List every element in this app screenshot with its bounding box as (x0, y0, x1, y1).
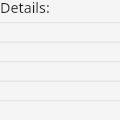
button[interactable]: Details: (0, 0, 120, 22)
button[interactable]: Detail row 4 (0, 82, 120, 102)
button[interactable]: Detail row 3 (0, 62, 120, 82)
button[interactable]: Detail row 1 (0, 22, 120, 42)
button[interactable]: Detail row 2 (0, 42, 120, 62)
staticText: Details: (0, 0, 50, 17)
